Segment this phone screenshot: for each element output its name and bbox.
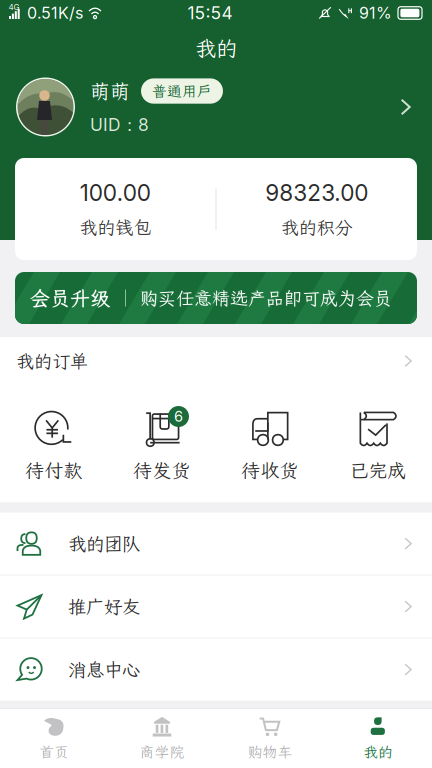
staticText: 购物车: [247, 742, 292, 762]
staticText: 消息中心: [68, 657, 140, 682]
button[interactable]: 我的团队: [0, 513, 432, 575]
button[interactable]: 购物车: [216, 709, 324, 768]
button[interactable]: 消息中心: [0, 639, 432, 701]
button[interactable]: 会员升级: [15, 272, 417, 324]
staticText: 我的: [363, 742, 393, 762]
staticText: 待收货: [241, 458, 298, 483]
staticText: 100.00: [80, 179, 151, 206]
staticText: 我的团队: [68, 531, 140, 556]
button[interactable]: 98323.00: [216, 158, 417, 260]
staticText: 首页: [39, 742, 69, 762]
staticText: 91%: [359, 3, 392, 23]
staticText: 待付款: [25, 458, 82, 483]
staticText: 15:54: [187, 2, 232, 23]
staticText: 我的积分: [281, 215, 353, 239]
button[interactable]: 我的订单: [0, 337, 432, 385]
button[interactable]: 待付款: [0, 411, 108, 483]
staticText: 萌萌: [90, 78, 130, 104]
staticText: 我的: [195, 34, 237, 62]
staticText: 已完成: [349, 458, 406, 483]
staticText: 6: [174, 408, 183, 425]
staticText: 我的订单: [16, 349, 88, 373]
button[interactable]: 商学院: [108, 709, 216, 768]
staticText: 我的钱包: [79, 215, 151, 239]
staticText: 4G: [8, 2, 19, 12]
staticText: 98323.00: [265, 179, 368, 206]
staticText: 会员升级: [30, 285, 110, 311]
staticText: 普通用户: [152, 81, 212, 101]
button[interactable]: 6: [108, 411, 216, 483]
staticText: 购买任意精选产品即可成为会员: [140, 286, 392, 310]
button[interactable]: 已完成: [324, 411, 432, 483]
staticText: 商学院: [139, 742, 184, 762]
button[interactable]: 待收货: [216, 411, 324, 483]
button[interactable]: 我的: [324, 709, 432, 768]
staticText: 待发货: [133, 458, 190, 483]
staticText: 0.51K/s: [27, 3, 83, 23]
staticText: UID：8: [90, 114, 149, 136]
button[interactable]: 个人资料: [0, 70, 432, 144]
button[interactable]: 推广好友: [0, 576, 432, 638]
button[interactable]: 100.00: [15, 158, 215, 260]
staticText: 推广好友: [68, 594, 140, 619]
button[interactable]: 首页: [0, 709, 108, 768]
